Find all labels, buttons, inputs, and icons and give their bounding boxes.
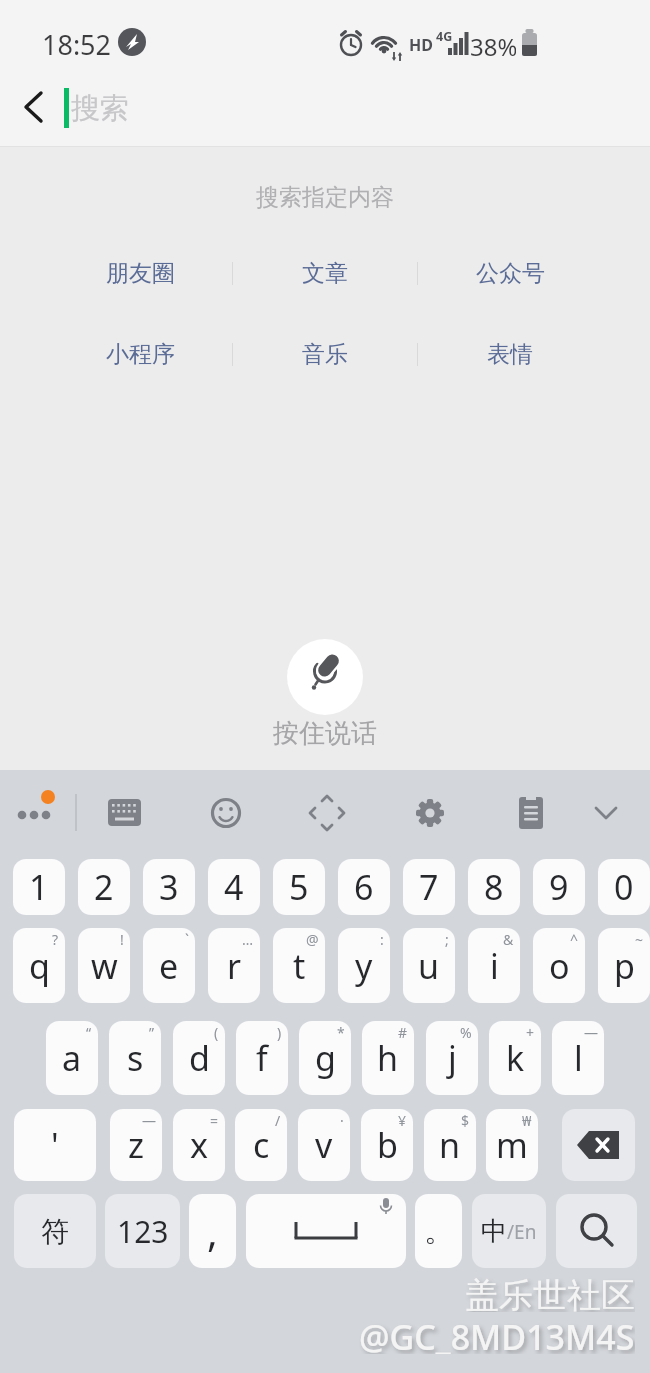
staticText: n: [439, 1122, 461, 1168]
staticText: ¥: [398, 1111, 407, 1130]
button[interactable]: l: [552, 1021, 604, 1095]
button[interactable]: g: [299, 1021, 351, 1095]
staticText: 小程序: [106, 340, 175, 369]
staticText: *: [337, 1023, 345, 1042]
button[interactable]: e: [143, 928, 195, 1003]
staticText: d: [189, 1035, 210, 1081]
staticText: 朋友圈: [106, 259, 175, 288]
button[interactable]: ': [14, 1109, 96, 1181]
staticText: s: [127, 1035, 144, 1081]
button[interactable]: 文章: [230, 258, 420, 288]
button[interactable]: v: [298, 1109, 350, 1181]
button[interactable]: b: [361, 1109, 413, 1181]
button[interactable]: 符: [14, 1194, 96, 1268]
staticText: /: [275, 1111, 281, 1130]
button[interactable]: 小程序: [45, 339, 235, 369]
button[interactable]: 音乐: [230, 339, 420, 369]
staticText: 。: [424, 1212, 454, 1250]
staticText: 搜索指定内容: [256, 183, 394, 209]
button[interactable]: 4: [208, 859, 260, 915]
button[interactable]: o: [533, 928, 585, 1003]
staticText: #: [398, 1023, 408, 1042]
staticText: 123: [117, 1211, 169, 1252]
staticText: ·: [340, 1111, 344, 1130]
staticText: ;: [445, 930, 449, 949]
button[interactable]: 8: [468, 859, 520, 915]
button[interactable]: d: [173, 1021, 225, 1095]
button[interactable]: [303, 788, 351, 838]
button[interactable]: w: [78, 928, 130, 1003]
button[interactable]: 。: [415, 1194, 462, 1268]
staticText: ?: [52, 930, 59, 949]
button[interactable]: n: [424, 1109, 476, 1181]
staticText: h: [377, 1035, 399, 1081]
staticText: ': [51, 1122, 59, 1168]
staticText: —: [584, 1023, 598, 1042]
staticText: @GC_8MD13M4S: [359, 1314, 635, 1354]
button[interactable]: [287, 639, 363, 715]
button[interactable]: [556, 1194, 637, 1268]
staticText: ^: [570, 930, 579, 949]
staticText: 38%: [470, 30, 516, 56]
button[interactable]: p: [598, 928, 650, 1003]
button[interactable]: s: [109, 1021, 161, 1095]
button[interactable]: 中: [472, 1194, 546, 1268]
staticText: @: [306, 930, 319, 949]
staticText: 4G: [436, 28, 453, 42]
staticText: i: [490, 943, 499, 989]
staticText: !: [120, 930, 124, 949]
button[interactable]: 123: [105, 1194, 180, 1268]
button[interactable]: y: [338, 928, 390, 1003]
staticText: 3: [159, 864, 179, 910]
staticText: =: [210, 1111, 219, 1130]
button[interactable]: 7: [403, 859, 455, 915]
button[interactable]: c: [235, 1109, 287, 1181]
button[interactable]: 9: [533, 859, 585, 915]
button[interactable]: 0: [598, 859, 650, 915]
staticText: t: [293, 943, 306, 989]
button[interactable]: x: [173, 1109, 225, 1181]
staticText: e: [159, 943, 179, 989]
button[interactable]: ,: [189, 1194, 236, 1268]
button[interactable]: [100, 788, 148, 838]
button[interactable]: 1: [13, 859, 65, 915]
staticText: +: [526, 1023, 535, 1042]
button[interactable]: [8, 84, 60, 130]
button[interactable]: [246, 1194, 406, 1268]
button[interactable]: [406, 788, 454, 838]
button[interactable]: 6: [338, 859, 390, 915]
button[interactable]: [202, 788, 250, 838]
button[interactable]: [8, 786, 64, 838]
button[interactable]: r: [208, 928, 260, 1003]
button[interactable]: 公众号: [415, 258, 605, 288]
button[interactable]: i: [468, 928, 520, 1003]
staticText: v: [315, 1122, 333, 1168]
button[interactable]: 朋友圈: [45, 258, 235, 288]
button[interactable]: k: [489, 1021, 541, 1095]
button[interactable]: j: [426, 1021, 478, 1095]
button[interactable]: a: [46, 1021, 98, 1095]
staticText: 文章: [302, 259, 348, 288]
staticText: 表情: [487, 340, 533, 369]
staticText: :: [380, 930, 384, 949]
button[interactable]: 3: [143, 859, 195, 915]
staticText: m: [496, 1122, 528, 1168]
button[interactable]: m: [486, 1109, 538, 1181]
button[interactable]: [562, 1109, 635, 1181]
button[interactable]: q: [13, 928, 65, 1003]
staticText: a: [62, 1035, 82, 1081]
button[interactable]: t: [273, 928, 325, 1003]
button[interactable]: h: [362, 1021, 414, 1095]
button[interactable]: u: [403, 928, 455, 1003]
staticText: 7: [419, 864, 439, 910]
button[interactable]: 表情: [415, 339, 605, 369]
staticText: `: [185, 930, 189, 949]
staticText: 4: [224, 864, 244, 910]
button[interactable]: f: [236, 1021, 288, 1095]
button[interactable]: z: [110, 1109, 162, 1181]
button[interactable]: [584, 788, 632, 838]
button[interactable]: 2: [78, 859, 130, 915]
staticText: ): [277, 1023, 282, 1042]
button[interactable]: 5: [273, 859, 325, 915]
button[interactable]: [507, 788, 555, 838]
